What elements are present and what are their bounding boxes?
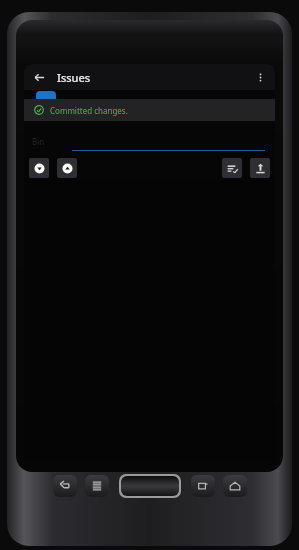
- button[interactable]: [53, 475, 77, 497]
- button[interactable]: Upload: [250, 158, 270, 178]
- button[interactable]: More options: [250, 67, 270, 87]
- button[interactable]: Confirm list: [222, 158, 242, 178]
- button[interactable]: Next: [57, 158, 77, 178]
- button[interactable]: [85, 475, 109, 497]
- staticText: Committed changes.: [50, 105, 128, 116]
- button[interactable]: Navigate up: [29, 67, 49, 87]
- button[interactable]: [223, 475, 247, 497]
- button[interactable]: [72, 131, 265, 151]
- button[interactable]: [191, 475, 215, 497]
- button[interactable]: Previous: [29, 158, 49, 178]
- staticText: Issues: [57, 70, 91, 85]
- button[interactable]: Scan: [121, 476, 179, 496]
- staticText: Bin: [32, 136, 72, 147]
